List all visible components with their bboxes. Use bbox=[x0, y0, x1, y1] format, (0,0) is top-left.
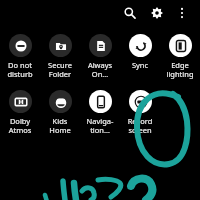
staticText: Naviga- tion… bbox=[81, 116, 119, 135]
button[interactable]: Record screen bbox=[120, 90, 160, 135]
button[interactable]: Settings bbox=[146, 2, 168, 24]
button[interactable]: Secure Folder bbox=[40, 34, 80, 79]
staticText: Record screen bbox=[121, 116, 159, 135]
staticText: Do not disturb bbox=[1, 60, 39, 79]
button[interactable]: More options bbox=[171, 2, 193, 24]
button[interactable]: Search bbox=[119, 2, 141, 24]
staticText: Secure Folder bbox=[41, 60, 79, 79]
button[interactable]: Dolby Atmos bbox=[0, 90, 40, 135]
button[interactable]: Kids Home bbox=[40, 90, 80, 135]
button[interactable]: Edge lighting bbox=[160, 34, 200, 79]
button[interactable]: Do not disturb bbox=[0, 34, 40, 79]
staticText: Always On… bbox=[81, 60, 119, 79]
staticText: Kids Home bbox=[41, 116, 79, 135]
staticText: Sync bbox=[121, 60, 159, 70]
button[interactable]: Sync bbox=[120, 34, 160, 70]
staticText: Edge lighting bbox=[161, 60, 199, 79]
staticText: Dolby Atmos bbox=[1, 116, 39, 135]
button[interactable]: Naviga- tion… bbox=[80, 90, 120, 135]
button[interactable]: Always On… bbox=[80, 34, 120, 79]
